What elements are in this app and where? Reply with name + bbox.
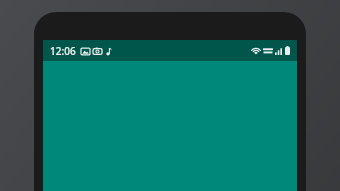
other: Status bar <box>43 40 297 61</box>
staticText: 12:06 <box>50 44 76 58</box>
button[interactable]: Status bar <box>43 40 297 191</box>
